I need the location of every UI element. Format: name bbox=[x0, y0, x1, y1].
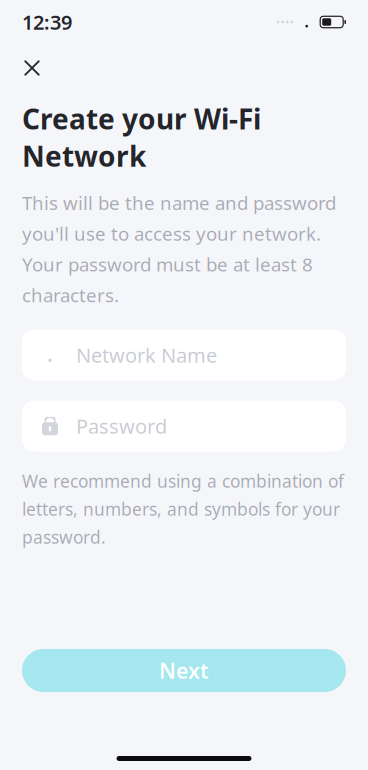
staticText: We recommend using a combination of lett… bbox=[22, 469, 344, 549]
staticText: This will be the name and password you'l… bbox=[22, 190, 336, 308]
button[interactable]: Close bbox=[10, 46, 54, 90]
button[interactable]: Next bbox=[22, 649, 346, 692]
staticText: 12:39 bbox=[22, 9, 72, 35]
button[interactable]: Password bbox=[22, 400, 346, 451]
staticText: Next bbox=[159, 656, 209, 685]
staticText: Create your Wi-Fi Network bbox=[22, 100, 261, 174]
staticText: Network Name bbox=[76, 342, 217, 368]
staticText: Password bbox=[76, 413, 167, 439]
button[interactable]: Network Name bbox=[22, 329, 346, 380]
